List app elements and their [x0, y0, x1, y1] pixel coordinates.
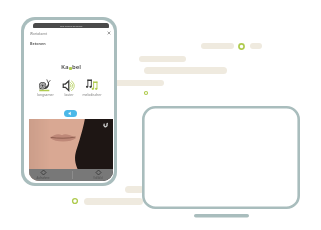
staticText: lauter: [64, 92, 74, 96]
staticText: Betonen: [30, 41, 46, 46]
staticText: melodischer: [82, 92, 102, 96]
button[interactable]: langsamer: [33, 79, 57, 96]
button[interactable]: Close: [106, 30, 112, 36]
staticText: Aufnahme: [36, 176, 50, 180]
button[interactable]: Play audio: [64, 110, 77, 117]
staticText: bel: [72, 63, 82, 71]
staticText: Wortakzent: [30, 32, 48, 36]
staticText: Vollbild: [93, 176, 103, 180]
button[interactable]: Aufnahme: [32, 170, 54, 180]
staticText: app.lernen.example: [60, 24, 83, 27]
button[interactable]: melodischer: [80, 79, 104, 96]
staticText: Ka: [61, 63, 69, 71]
button[interactable]: lauter: [57, 79, 81, 96]
button[interactable]: Vollbild: [87, 170, 109, 180]
staticText: langsamer: [37, 92, 54, 96]
